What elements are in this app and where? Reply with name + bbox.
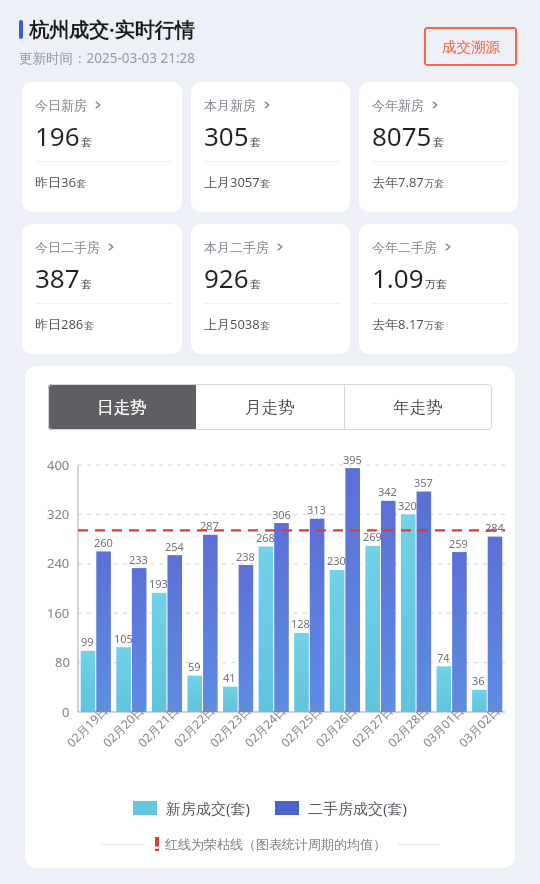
staticText: 03月01日 [419, 702, 467, 750]
staticText: 更新时间：2025-03-03 21:28 [19, 49, 195, 67]
staticText: 99 [81, 634, 94, 649]
staticText: 313 [307, 502, 326, 517]
staticText: 387 [35, 260, 80, 295]
staticText: 268 [256, 530, 275, 545]
staticText: 357 [414, 475, 433, 490]
button[interactable]: 本月二手房 [191, 224, 350, 354]
staticText: 160 [47, 604, 70, 622]
staticText: 今年新房 [372, 97, 424, 113]
staticText: 二手房成交(套) [308, 798, 408, 818]
staticText: 套 [260, 319, 270, 332]
staticText: 02月19日 [63, 702, 111, 750]
staticText: 36 [472, 673, 485, 688]
staticText: 193 [149, 576, 168, 591]
staticText: 套 [76, 177, 86, 190]
staticText: 342 [378, 484, 397, 499]
staticText: 269 [363, 529, 382, 544]
staticText: 80 [55, 653, 70, 671]
staticText: 日走势 [97, 397, 147, 418]
staticText: 去年8.17 [372, 315, 424, 333]
staticText: 306 [272, 507, 291, 522]
staticText: 今日二手房 [35, 239, 100, 255]
staticText: 月走势 [245, 397, 295, 418]
staticText: 02月24日 [241, 702, 289, 750]
staticText: 杭州成交·实时行情 [29, 16, 195, 43]
staticText: 万套 [424, 177, 444, 190]
staticText: 320 [47, 505, 70, 523]
staticText: 03月02日 [455, 702, 503, 750]
staticText: 41 [223, 670, 236, 685]
staticText: 400 [47, 456, 70, 474]
staticText: 260 [94, 535, 113, 550]
staticText: 年走势 [393, 397, 443, 418]
staticText: 395 [343, 452, 362, 467]
staticText: 套 [250, 277, 261, 291]
staticText: 284 [485, 520, 504, 535]
button[interactable]: 年走势 [344, 384, 492, 430]
staticText: 今日新房 [35, 97, 87, 113]
staticText: 926 [204, 260, 249, 295]
staticText: 105 [114, 631, 133, 646]
staticText: 02月27日 [348, 702, 396, 750]
button[interactable]: 今年二手房 [359, 224, 518, 354]
staticText: 02月23日 [206, 702, 254, 750]
staticText: 成交溯源 [442, 38, 500, 56]
button[interactable]: 月走势 [196, 384, 344, 430]
staticText: 233 [129, 552, 148, 567]
staticText: 02月25日 [277, 702, 325, 750]
staticText: 128 [291, 616, 310, 631]
staticText: 287 [200, 518, 219, 533]
staticText: 套 [250, 135, 261, 149]
staticText: 02月21日 [134, 702, 182, 750]
staticText: 万套 [425, 277, 447, 291]
staticText: 套 [81, 277, 92, 291]
staticText: 1.09 [372, 260, 424, 295]
staticText: 254 [165, 539, 184, 554]
staticText: 320 [398, 498, 417, 513]
button[interactable]: 今日新房 [22, 82, 182, 212]
staticText: 196 [35, 118, 80, 153]
staticText: 02月28日 [384, 702, 432, 750]
staticText: 240 [47, 554, 70, 572]
staticText: 259 [449, 536, 468, 551]
staticText: 8075 [372, 118, 432, 153]
button[interactable]: 今日二手房 [22, 224, 182, 354]
staticText: 套 [84, 319, 94, 332]
staticText: 59 [188, 659, 201, 674]
staticText: 红线为荣枯线（图表统计周期的均值） [165, 836, 386, 852]
staticText: 230 [327, 553, 346, 568]
button[interactable]: 日走势 [48, 384, 196, 430]
staticText: 万套 [424, 319, 444, 332]
staticText: 本月新房 [204, 97, 256, 113]
staticText: 新房成交(套) [166, 798, 251, 818]
staticText: 0 [62, 703, 70, 721]
staticText: 305 [204, 118, 249, 153]
staticText: 238 [236, 549, 255, 564]
staticText: 昨日36 [35, 173, 76, 191]
staticText: 02月22日 [170, 702, 218, 750]
staticText: 套 [260, 177, 270, 190]
button[interactable]: 本月新房 [191, 82, 350, 212]
staticText: 02月26日 [312, 702, 360, 750]
button[interactable]: 成交溯源 [424, 27, 517, 66]
staticText: 上月5038 [204, 315, 260, 333]
staticText: 套 [433, 135, 444, 149]
staticText: 本月二手房 [204, 239, 269, 255]
staticText: 去年7.87 [372, 173, 424, 191]
button[interactable]: 今年新房 [359, 82, 518, 212]
staticText: 上月3057 [204, 173, 260, 191]
staticText: 02月20日 [99, 702, 147, 750]
staticText: 今年二手房 [372, 239, 437, 255]
staticText: 昨日286 [35, 315, 84, 333]
staticText: 套 [81, 135, 92, 149]
staticText: 74 [437, 650, 450, 665]
